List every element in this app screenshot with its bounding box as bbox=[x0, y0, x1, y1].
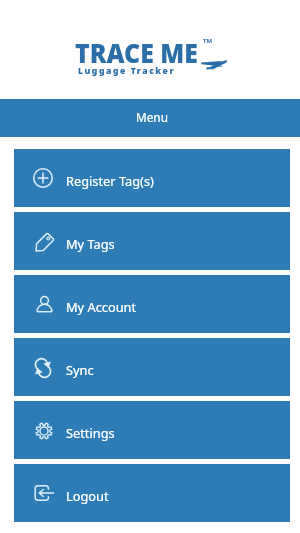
button[interactable]: Logout bbox=[14, 464, 290, 522]
staticText: Luggage Tracker bbox=[78, 65, 175, 77]
staticText: My Tags bbox=[66, 235, 115, 252]
staticText: TM bbox=[203, 37, 213, 45]
staticText: Sync bbox=[66, 361, 94, 378]
button[interactable]: Settings bbox=[14, 401, 290, 459]
button[interactable]: Sync bbox=[14, 338, 290, 396]
button[interactable]: My Tags bbox=[14, 212, 290, 270]
staticText: Register Tag(s) bbox=[66, 172, 154, 189]
staticText: TRACE ME bbox=[75, 34, 198, 71]
staticText: Menu bbox=[136, 109, 168, 125]
button[interactable]: Menu bbox=[0, 99, 300, 137]
staticText: Settings bbox=[66, 424, 115, 441]
staticText: Logout bbox=[66, 487, 109, 504]
staticText: My Account bbox=[66, 298, 137, 315]
button[interactable]: My Account bbox=[14, 275, 290, 333]
button[interactable]: Register Tag(s) bbox=[14, 149, 290, 207]
